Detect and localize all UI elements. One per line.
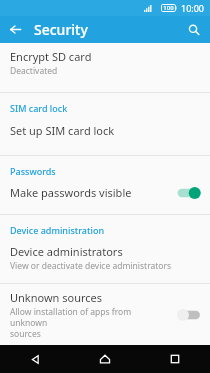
staticText: 10:00 bbox=[181, 2, 205, 14]
button[interactable]: Make passwords visible bbox=[0, 179, 210, 206]
staticText: Passwords bbox=[10, 165, 56, 177]
button[interactable]: Set up SIM card lock bbox=[0, 116, 210, 145]
staticText: Allow installation of apps from unknown … bbox=[10, 306, 170, 339]
button[interactable]: Home bbox=[70, 345, 140, 373]
button[interactable]: Unknown sources bbox=[0, 284, 210, 345]
staticText: Device administration bbox=[10, 224, 105, 236]
staticText: Unknown sources bbox=[10, 290, 103, 305]
staticText: SIM card lock bbox=[10, 102, 68, 114]
staticText: Security bbox=[34, 20, 88, 39]
button[interactable]: Recent apps bbox=[140, 345, 210, 373]
staticText: Encrypt SD card bbox=[10, 49, 92, 64]
staticText: Set up SIM card lock bbox=[10, 123, 115, 138]
staticText: Deactivated bbox=[10, 65, 58, 77]
staticText: Device administrators bbox=[10, 244, 123, 259]
button[interactable]: Back bbox=[0, 345, 70, 373]
button[interactable]: Search bbox=[178, 16, 210, 43]
button[interactable]: Back bbox=[0, 16, 30, 43]
staticText: View or deactivate device administrators bbox=[10, 260, 172, 272]
staticText: Make passwords visible bbox=[10, 185, 132, 200]
staticText: 100 bbox=[163, 4, 174, 12]
button[interactable]: Device administrators bbox=[0, 238, 210, 277]
button[interactable]: Encrypt SD card bbox=[0, 43, 210, 82]
